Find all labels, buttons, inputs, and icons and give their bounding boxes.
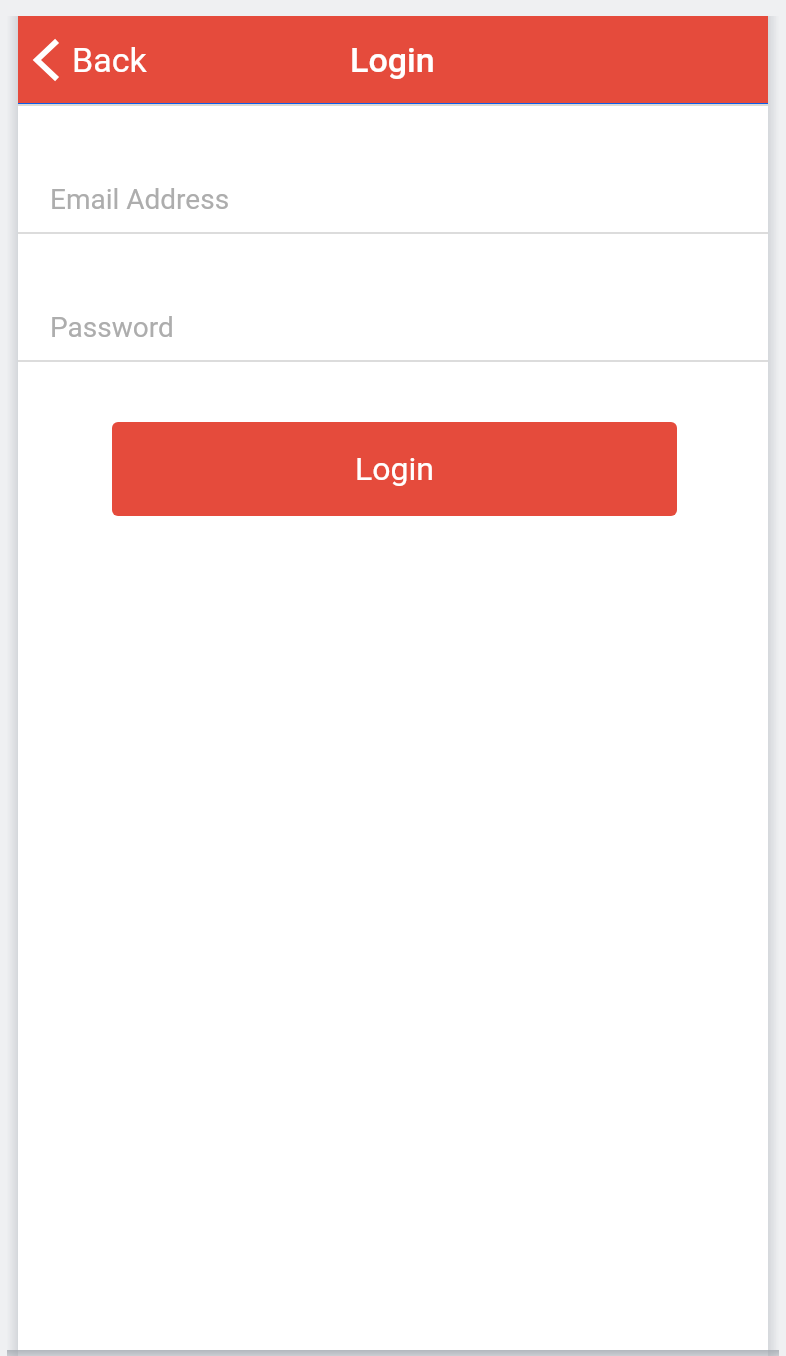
staticText: Password bbox=[50, 311, 174, 344]
staticText: Login bbox=[350, 40, 435, 80]
button[interactable]: Email Address bbox=[18, 106, 768, 234]
staticText: Email Address bbox=[50, 183, 230, 216]
button[interactable]: Password bbox=[18, 234, 768, 362]
staticText: Login bbox=[355, 450, 434, 488]
staticText: Back bbox=[72, 40, 147, 80]
button[interactable]: Login bbox=[112, 422, 677, 516]
other: Back bbox=[34, 38, 60, 82]
button[interactable]: Back bbox=[18, 32, 159, 88]
